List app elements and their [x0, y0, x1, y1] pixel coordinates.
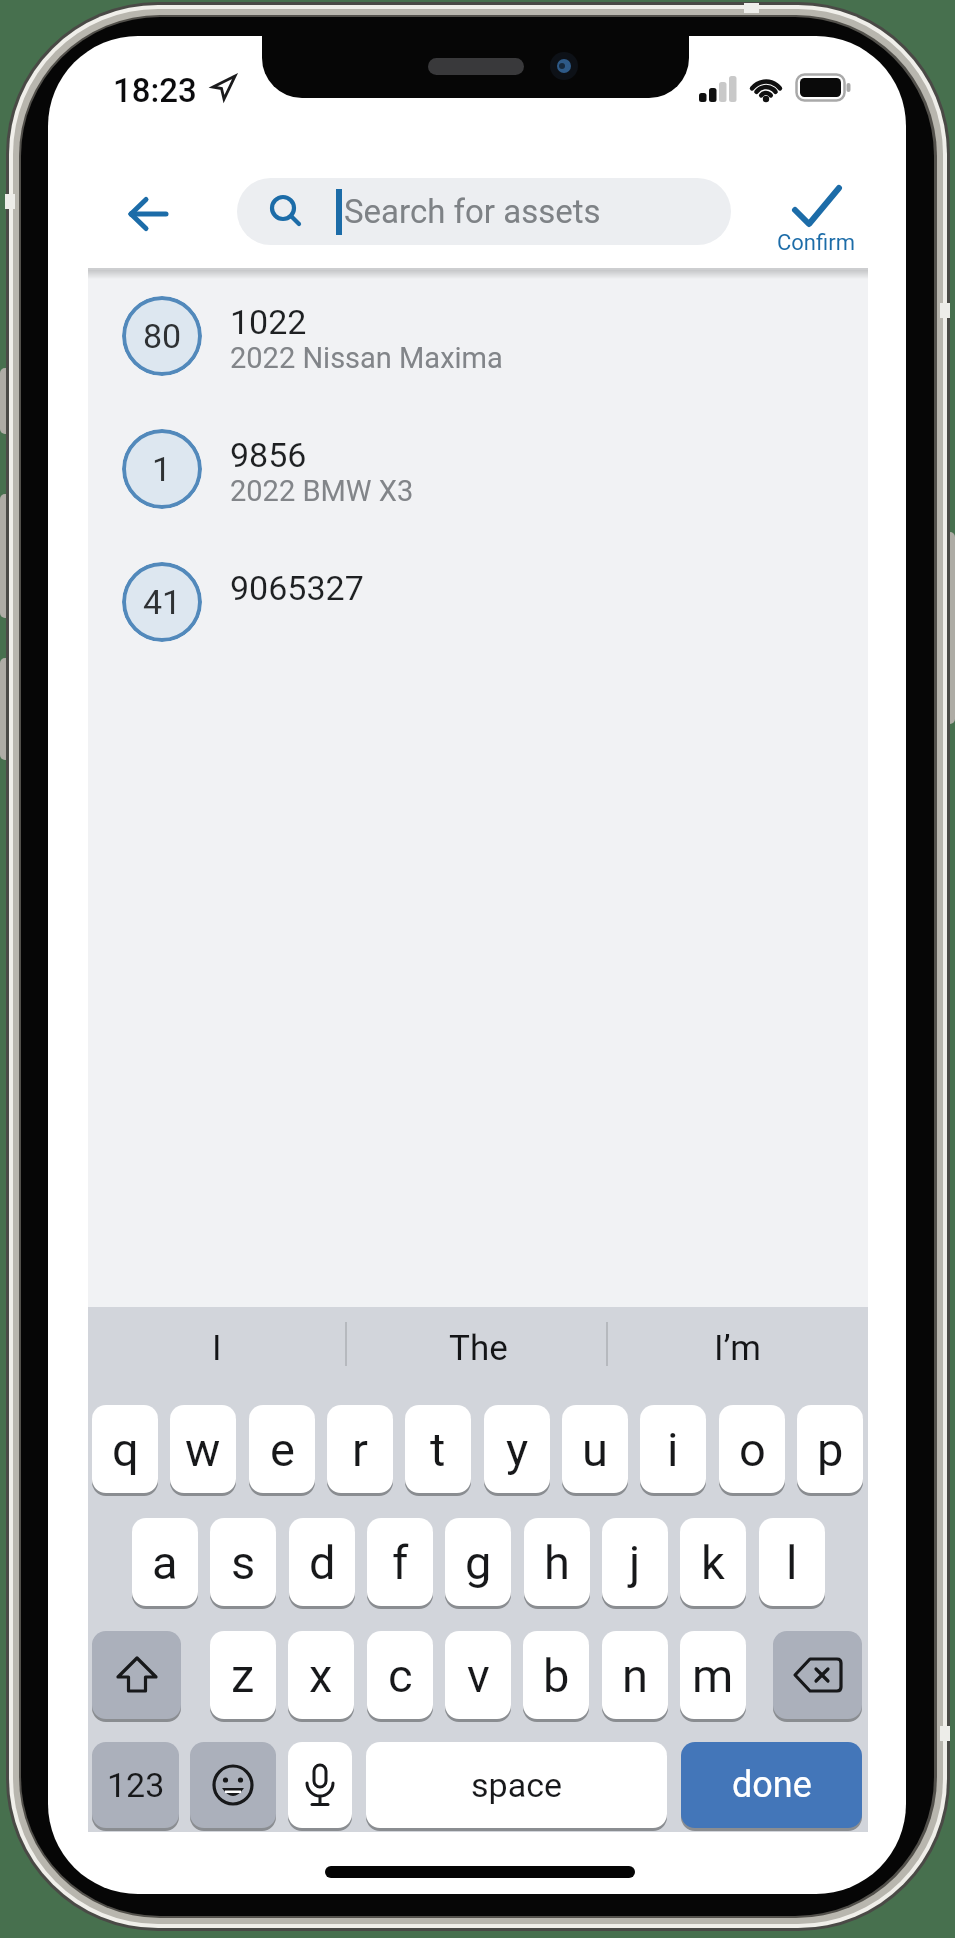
staticText: The [449, 1328, 508, 1369]
button[interactable]: l [759, 1518, 825, 1606]
button[interactable]: w [170, 1405, 236, 1493]
button[interactable] [230, 298, 790, 382]
button[interactable]: done [681, 1742, 862, 1828]
button[interactable]: r [327, 1405, 393, 1493]
staticText: p [817, 1422, 844, 1477]
button[interactable]: s [210, 1518, 276, 1606]
button[interactable] [230, 431, 790, 515]
staticText: Search for assets [344, 192, 601, 231]
button[interactable]: i [640, 1405, 706, 1493]
button[interactable]: v [445, 1631, 511, 1719]
staticText: u [582, 1422, 608, 1477]
staticText: 2022 BMW X3 [230, 474, 414, 508]
staticText: f [392, 1535, 409, 1590]
button[interactable]: h [524, 1518, 590, 1606]
staticText: i [667, 1422, 679, 1477]
staticText: 123 [107, 1765, 165, 1805]
staticText: space [471, 1765, 562, 1805]
button[interactable]: Search for assets [237, 178, 731, 245]
button[interactable] [92, 1631, 181, 1719]
button[interactable]: j [602, 1518, 668, 1606]
button[interactable] [773, 1631, 862, 1719]
button[interactable]: 41 [122, 562, 202, 642]
staticText: x [309, 1648, 333, 1703]
staticText: 41 [143, 582, 182, 622]
staticText: o [739, 1422, 766, 1477]
staticText: 80 [143, 316, 182, 356]
staticText: r [352, 1422, 368, 1477]
button[interactable]: space [366, 1742, 667, 1828]
staticText: k [701, 1535, 725, 1590]
staticText: 18:23 [113, 71, 197, 110]
button[interactable] [118, 188, 178, 240]
button[interactable]: p [797, 1405, 863, 1493]
staticText: a [152, 1535, 178, 1590]
staticText: m [692, 1648, 734, 1703]
button[interactable]: x [288, 1631, 354, 1719]
button[interactable] [190, 1742, 276, 1828]
button[interactable]: b [523, 1631, 589, 1719]
staticText: I’m [714, 1328, 761, 1369]
button[interactable]: k [680, 1518, 746, 1606]
staticText: 1 [152, 449, 172, 489]
button[interactable]: q [92, 1405, 158, 1493]
staticText: j [629, 1535, 641, 1590]
staticText: I [212, 1328, 222, 1369]
staticText: q [112, 1422, 139, 1477]
staticText: done [732, 1764, 812, 1806]
button[interactable]: e [249, 1405, 315, 1493]
button[interactable]: t [405, 1405, 471, 1493]
button[interactable]: f [367, 1518, 433, 1606]
button[interactable] [288, 1742, 352, 1828]
staticText: y [506, 1422, 529, 1477]
staticText: Confirm [777, 230, 855, 254]
staticText: l [786, 1535, 798, 1590]
button[interactable]: y [484, 1405, 550, 1493]
staticText: 1022 [230, 302, 307, 342]
staticText: s [231, 1535, 256, 1590]
staticText: d [309, 1535, 336, 1590]
button[interactable]: o [719, 1405, 785, 1493]
staticText: t [430, 1422, 446, 1477]
staticText: 9065327 [230, 568, 364, 608]
button[interactable]: 123 [92, 1742, 179, 1828]
button[interactable]: n [602, 1631, 668, 1719]
button[interactable] [230, 564, 790, 648]
staticText: g [465, 1535, 492, 1590]
button[interactable]: g [445, 1518, 511, 1606]
button[interactable]: u [562, 1405, 628, 1493]
button[interactable]: z [210, 1631, 276, 1719]
button[interactable]: Confirm [766, 172, 866, 256]
button[interactable]: 1 [122, 429, 202, 509]
staticText: v [467, 1648, 490, 1703]
staticText: h [544, 1535, 570, 1590]
button[interactable]: a [132, 1518, 198, 1606]
button[interactable]: m [680, 1631, 746, 1719]
staticText: 2022 Nissan Maxima [230, 341, 503, 375]
staticText: n [622, 1648, 648, 1703]
staticText: e [270, 1422, 295, 1477]
staticText: z [231, 1648, 255, 1703]
staticText: w [185, 1422, 221, 1477]
staticText: 9856 [230, 435, 307, 475]
staticText: c [388, 1648, 413, 1703]
button[interactable]: c [367, 1631, 433, 1719]
staticText: b [543, 1648, 570, 1703]
button[interactable]: 80 [122, 296, 202, 376]
button[interactable]: d [289, 1518, 355, 1606]
